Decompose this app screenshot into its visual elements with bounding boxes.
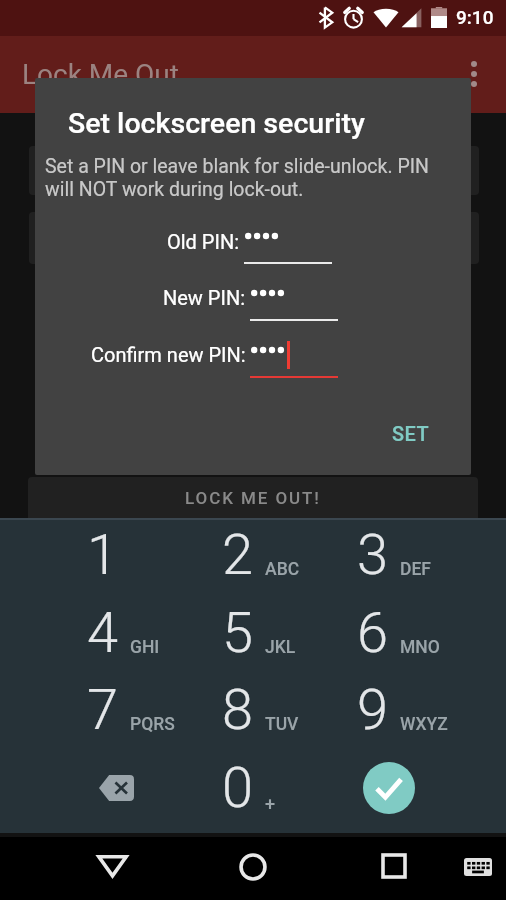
staticText: LOCK ME OUT! (185, 488, 321, 508)
button[interactable]: 8 (186, 671, 321, 749)
staticText: Set a PIN or leave blank for slide-unloc… (45, 155, 445, 201)
button[interactable]: Switch keyboard (446, 837, 506, 900)
staticText: JKL (265, 637, 296, 658)
staticText: 9 (357, 677, 389, 743)
staticText: Set lockscreen security (68, 107, 365, 140)
staticText: 8 (222, 677, 254, 743)
button[interactable]: 5 (186, 594, 321, 672)
staticText: 5 (222, 600, 254, 666)
staticText: PQRS (130, 714, 175, 735)
staticText: ABC (265, 559, 300, 580)
staticText: Lock Me Out (22, 58, 179, 91)
staticText: 7 (87, 677, 119, 743)
staticText: GHI (130, 637, 160, 658)
button[interactable]: 2 (186, 516, 321, 594)
staticText: Old PIN: (167, 230, 240, 253)
button[interactable]: 9 (321, 671, 456, 749)
button[interactable]: 4 (51, 594, 186, 672)
staticText: DEF (400, 559, 431, 580)
staticText: 6 (357, 600, 389, 666)
staticText: 9:10 (456, 6, 494, 28)
staticText: 0 (222, 755, 254, 821)
button[interactable] (29, 212, 479, 264)
button[interactable]: 0 (186, 749, 321, 827)
staticText: SET (392, 422, 430, 445)
staticText: 2 (222, 522, 254, 588)
button[interactable]: 3 (321, 516, 456, 594)
staticText: + (265, 793, 276, 814)
staticText: 4 (87, 600, 119, 666)
staticText: 3 (357, 522, 389, 588)
button[interactable] (29, 146, 479, 195)
button[interactable]: 6 (321, 594, 456, 672)
staticText: 1 (87, 522, 119, 588)
staticText: MNO (400, 637, 440, 658)
button[interactable]: Enter (321, 749, 456, 827)
staticText: Confirm new PIN: (91, 343, 246, 366)
button[interactable]: More options (452, 52, 496, 96)
staticText: WXYZ (400, 714, 448, 735)
button[interactable]: Back (80, 837, 144, 900)
button[interactable]: LOCK ME OUT! (28, 477, 478, 518)
staticText: New PIN: (163, 286, 246, 309)
button[interactable]: 1 (51, 516, 186, 594)
button[interactable]: Backspace (51, 749, 186, 827)
button[interactable]: SET (378, 410, 444, 457)
button[interactable]: Recents (362, 837, 426, 900)
button[interactable]: 7 (51, 671, 186, 749)
button[interactable]: Home (221, 837, 285, 900)
staticText: TUV (265, 714, 299, 735)
